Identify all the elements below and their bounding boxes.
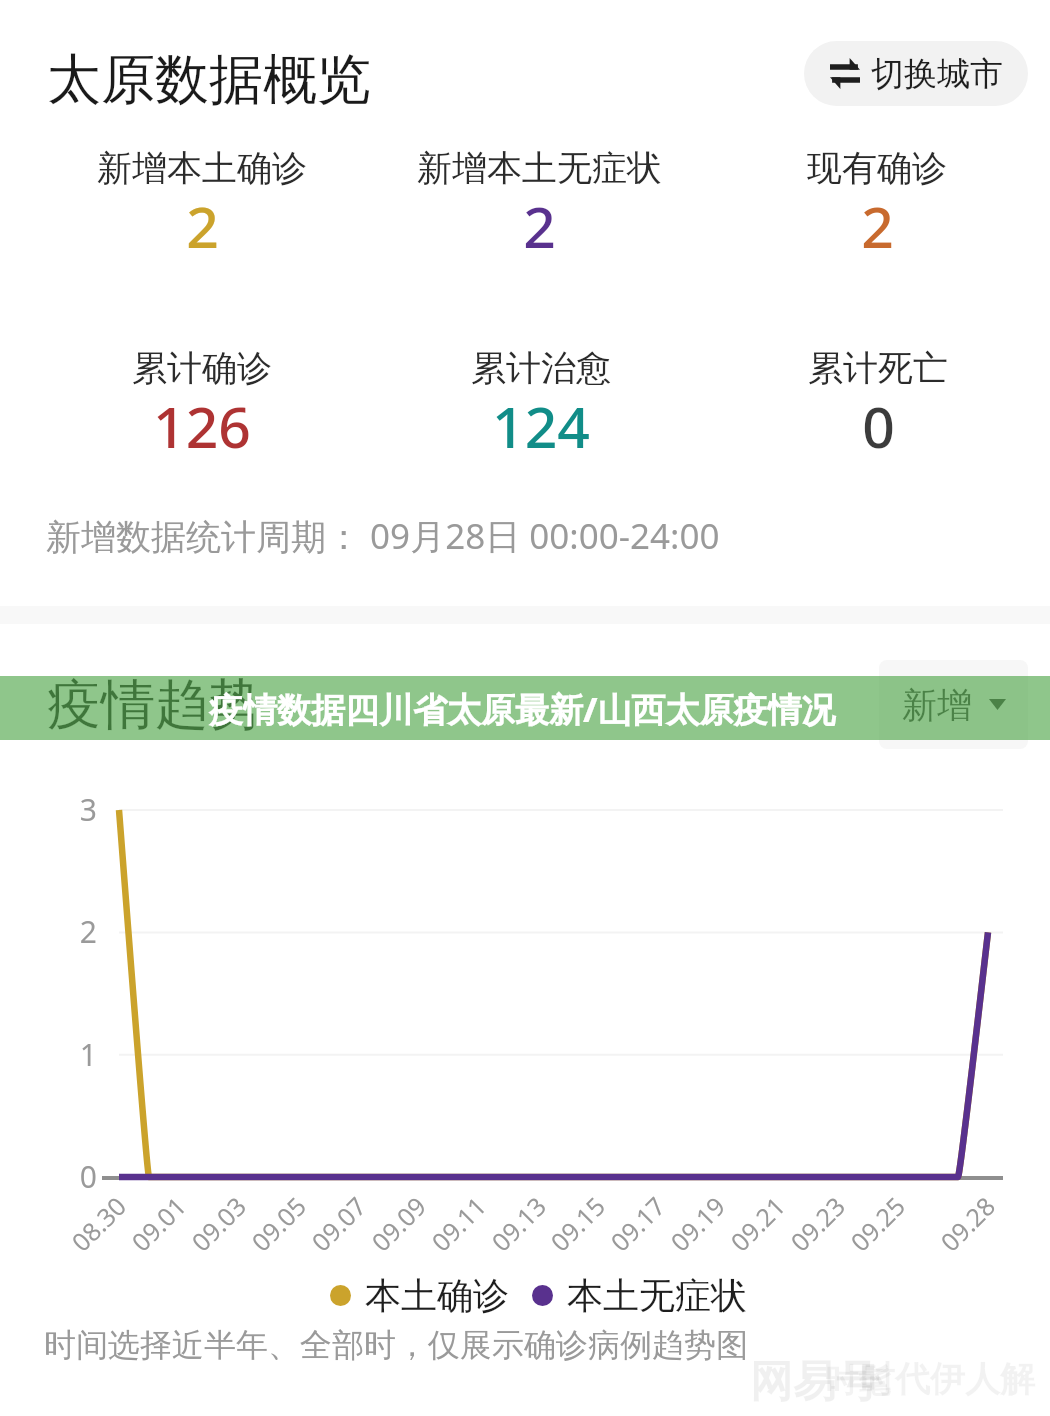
staticText: 新增数据统计周期： 09月28日 00:00-24:00 (46, 512, 720, 560)
staticText: 09.11 (391, 1189, 493, 1291)
staticText: 疫情趋势 (47, 671, 263, 739)
staticText: 09.28 (900, 1189, 1002, 1291)
staticText: 累计死亡 (808, 346, 948, 390)
staticText: 现有确诊 (807, 146, 947, 190)
staticText: 疫情数据四川省太原最新/山西太原疫情况 (209, 686, 836, 732)
staticText: 1 (64, 1034, 97, 1075)
staticText: 126 (153, 387, 251, 465)
staticText: 0 (862, 387, 895, 465)
staticText: 3 (64, 789, 97, 830)
staticText: 09.09 (331, 1189, 433, 1291)
staticText: 2 (64, 911, 97, 952)
staticText: 09.19 (630, 1189, 732, 1291)
staticText: 2 (523, 187, 556, 265)
staticText: 09.25 (810, 1189, 912, 1291)
staticText: 新增 (902, 683, 972, 727)
staticText: 累计治愈 (471, 346, 611, 390)
staticText: 09.03 (151, 1189, 253, 1291)
staticText: 切换城市 (871, 53, 1003, 95)
staticText: 09.05 (211, 1189, 313, 1291)
other: 切换城市 (830, 58, 860, 89)
staticText: 太原数据概览 (47, 46, 371, 114)
staticText: 09.23 (750, 1189, 852, 1291)
staticText: 09.13 (451, 1189, 553, 1291)
staticText: 09.01 (91, 1189, 193, 1291)
staticText: 时间选择近半年、全部时，仅展示确诊病例趋势图 (44, 1325, 748, 1365)
button[interactable]: 本土确诊 (330, 1273, 509, 1318)
button[interactable]: 本土无症状 (532, 1273, 747, 1318)
staticText: 09.17 (570, 1189, 672, 1291)
staticText: 网易号 (750, 1355, 879, 1409)
staticText: 新增本土无症状 (417, 146, 662, 190)
staticText: 本土确诊 (365, 1273, 509, 1318)
staticText: 新增本土确诊 (97, 146, 307, 190)
staticText: 09.15 (510, 1189, 612, 1291)
staticText: 09.21 (690, 1189, 792, 1291)
button[interactable]: 新增 (879, 660, 1028, 749)
staticText: 124 (492, 387, 590, 465)
staticText: 时髦 (825, 1360, 891, 1402)
staticText: 本土无症状 (567, 1273, 747, 1318)
staticText: 2 (861, 187, 894, 265)
staticText: 2 (186, 187, 219, 265)
button[interactable]: 切换城市 (804, 41, 1028, 106)
staticText: 08.30 (31, 1189, 133, 1291)
staticText: 时代伊人解 (860, 1357, 1035, 1401)
staticText: 累计确诊 (132, 346, 272, 390)
staticText: 0 (64, 1156, 97, 1197)
staticText: 09.07 (271, 1189, 373, 1291)
